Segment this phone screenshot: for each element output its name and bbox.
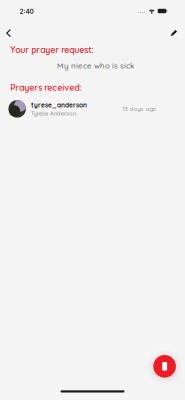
staticText: 13 days ago (122, 105, 156, 112)
staticText: Tyrese Anderson (31, 110, 76, 117)
button[interactable]: Back (1, 25, 18, 41)
staticText: tyrese_anderson (31, 101, 87, 109)
button[interactable]: Add prayer request (153, 355, 176, 378)
staticText: My niece who is sick (57, 60, 134, 70)
staticText: 2:40 (20, 7, 34, 15)
staticText: Your prayer request: (10, 44, 93, 55)
button[interactable]: tyrese_anderson (0, 98, 185, 119)
button[interactable]: Edit request (166, 25, 182, 41)
staticText: Prayers received: (10, 82, 81, 93)
